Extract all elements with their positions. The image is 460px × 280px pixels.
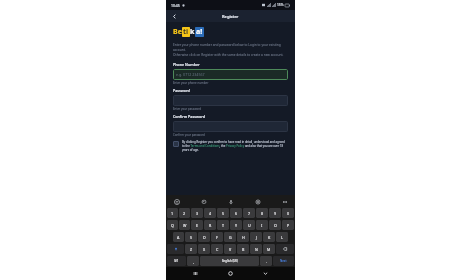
button[interactable]: Emoji <box>172 197 181 206</box>
button[interactable]: 6 <box>230 208 242 218</box>
staticText: 0 <box>287 211 290 216</box>
button[interactable]: E <box>191 220 203 230</box>
staticText: Enter your phone number and password bel… <box>173 43 288 57</box>
button[interactable]: !#1 <box>167 256 186 266</box>
staticText: Confirm your password <box>173 133 205 137</box>
staticText: O <box>274 223 277 228</box>
staticText: Phone Number <box>173 62 200 67</box>
button[interactable]: C <box>211 244 223 254</box>
staticText: W <box>183 223 187 228</box>
button[interactable]: Z <box>185 244 197 254</box>
button[interactable]: Stickers <box>199 197 208 206</box>
staticText: Q <box>171 223 174 228</box>
staticText: . <box>266 259 267 264</box>
staticText: M <box>267 247 271 252</box>
staticText: H <box>242 235 245 240</box>
staticText: G <box>229 235 232 240</box>
button[interactable]: K <box>263 232 275 242</box>
button[interactable]: T <box>217 220 229 230</box>
button[interactable]: 3 <box>191 208 203 218</box>
button[interactable] <box>173 95 288 106</box>
staticText: Enter your phone number <box>173 81 209 85</box>
button[interactable]: By clicking Register you confirm to have… <box>173 140 288 152</box>
staticText: 15% <box>277 3 284 7</box>
staticText: Enter your password <box>173 107 202 111</box>
button[interactable]: Backspace <box>276 244 294 254</box>
staticText: 3 <box>196 211 199 216</box>
staticText: P <box>287 223 290 228</box>
button[interactable]: B <box>237 244 249 254</box>
button[interactable]: W <box>179 220 190 230</box>
button[interactable]: O <box>269 220 281 230</box>
button[interactable]: U <box>243 220 255 230</box>
staticText: Next <box>280 259 287 263</box>
button[interactable]: Settings <box>253 197 262 206</box>
staticText: V <box>229 247 232 252</box>
button[interactable]: Shift <box>167 244 184 254</box>
staticText: N <box>255 247 258 252</box>
button[interactable]: 2 <box>179 208 190 218</box>
staticText: ti <box>183 27 189 37</box>
button[interactable]: Voice input <box>226 197 235 206</box>
button[interactable]: I <box>256 220 268 230</box>
staticText: D <box>203 235 206 240</box>
button[interactable]: G <box>224 232 236 242</box>
button[interactable]: P <box>282 220 294 230</box>
staticText: E <box>196 223 198 228</box>
button[interactable]: Q <box>167 220 178 230</box>
button[interactable]: N <box>250 244 262 254</box>
button[interactable]: 1 <box>167 208 178 218</box>
button[interactable] <box>173 121 288 132</box>
button[interactable]: 0 <box>282 208 294 218</box>
button[interactable]: R <box>204 220 216 230</box>
button[interactable]: V <box>224 244 236 254</box>
button[interactable]: 5 <box>217 208 229 218</box>
staticText: L <box>281 235 283 240</box>
button[interactable]: Hide keyboard <box>260 268 271 279</box>
staticText: I <box>261 223 263 228</box>
staticText: a! <box>196 27 203 37</box>
button[interactable]: 4 <box>204 208 216 218</box>
button[interactable]: F <box>211 232 223 242</box>
button[interactable]: 8 <box>256 208 268 218</box>
button[interactable]: , <box>187 256 199 266</box>
staticText: 4 <box>209 211 212 216</box>
staticText: 9 <box>274 211 277 216</box>
staticText: F <box>216 235 218 240</box>
button[interactable]: Next <box>273 256 294 266</box>
button[interactable]: e.g. 0712 234567 <box>173 69 288 80</box>
button[interactable]: H <box>237 232 249 242</box>
staticText: X <box>203 247 206 252</box>
staticText: Y <box>235 223 238 228</box>
staticText: C <box>216 247 219 252</box>
staticText: 6 <box>235 211 238 216</box>
staticText: J <box>256 235 257 240</box>
button[interactable]: . <box>260 256 272 266</box>
staticText: !#1 <box>174 259 179 263</box>
button[interactable]: Back <box>169 11 179 21</box>
staticText: U <box>248 223 251 228</box>
button[interactable]: M <box>263 244 275 254</box>
staticText: S <box>190 235 192 240</box>
staticText: A <box>177 235 180 240</box>
button[interactable]: J <box>250 232 262 242</box>
button[interactable]: L <box>276 232 288 242</box>
button[interactable]: Home <box>225 268 236 279</box>
staticText: By clicking Register you confirm to have… <box>182 140 288 152</box>
staticText: Password <box>173 88 190 93</box>
button[interactable]: English (UK) <box>200 256 259 266</box>
button[interactable]: Y <box>230 220 242 230</box>
button[interactable]: D <box>198 232 210 242</box>
staticText: T <box>222 223 224 228</box>
button[interactable]: Recent apps <box>190 268 201 279</box>
staticText: B <box>242 247 245 252</box>
button[interactable]: More options <box>280 197 289 206</box>
button[interactable]: 7 <box>243 208 255 218</box>
button[interactable]: S <box>185 232 197 242</box>
button[interactable]: A <box>173 232 184 242</box>
button[interactable]: X <box>198 244 210 254</box>
staticText: 5 <box>222 211 225 216</box>
staticText: , <box>193 259 194 264</box>
button[interactable]: 9 <box>269 208 281 218</box>
staticText: R <box>209 223 212 228</box>
